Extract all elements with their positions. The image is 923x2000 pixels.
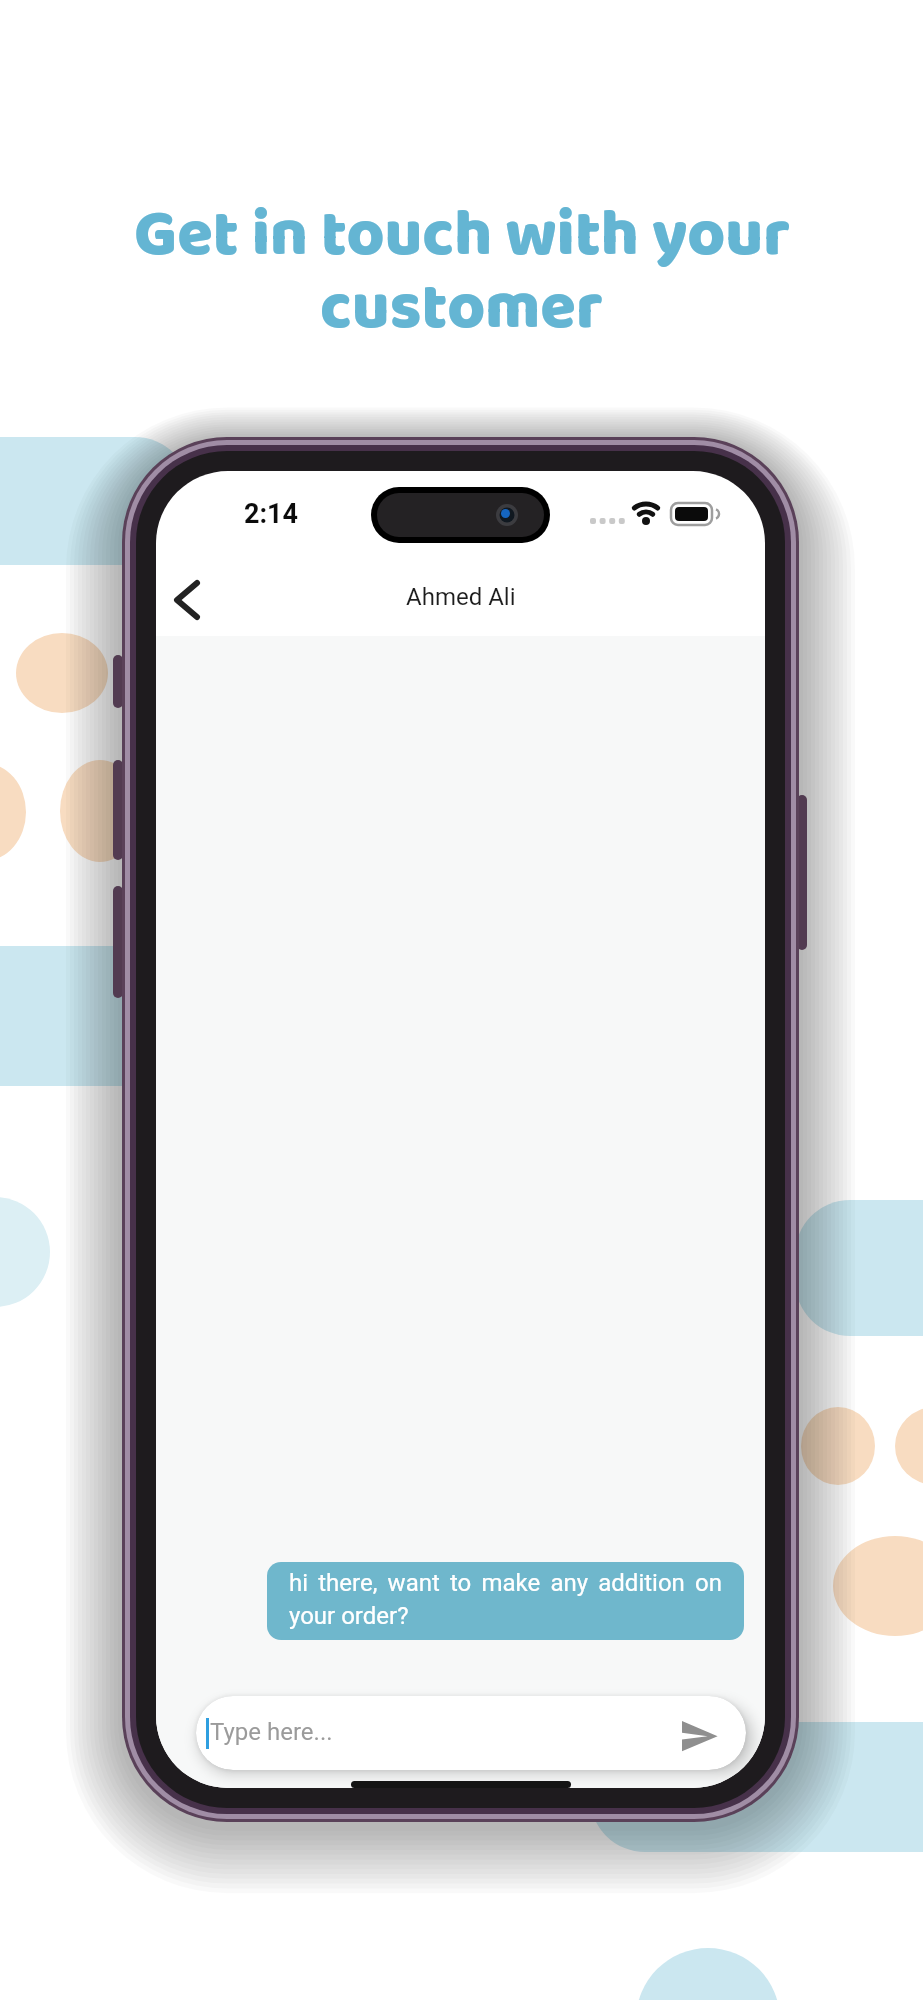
button[interactable]: Type here... <box>196 1696 746 1770</box>
staticText: 2:14 <box>244 498 299 530</box>
button[interactable] <box>676 1716 722 1754</box>
staticText: Ahmed Ali <box>406 583 516 611</box>
button[interactable] <box>166 573 214 627</box>
staticText: Get in touch with your <box>134 184 790 288</box>
staticText: hi there, want to make any addition on y… <box>289 1569 722 1633</box>
staticText: Type here... <box>210 1718 333 1746</box>
staticText: customer <box>320 257 603 361</box>
button[interactable]: hi there, want to make any addition on y… <box>267 1562 744 1640</box>
